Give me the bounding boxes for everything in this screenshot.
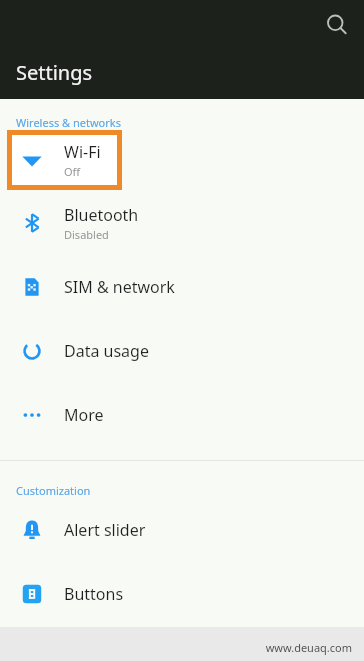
staticText: SIM & network [64, 276, 175, 298]
staticText: www.deuaq.com [265, 640, 352, 655]
staticText: Off [64, 164, 81, 179]
staticText: Customization [16, 483, 91, 498]
button[interactable]: SIM & network [0, 255, 364, 319]
button[interactable]: Alert slider [0, 498, 364, 562]
button[interactable]: Search [313, 1, 361, 49]
staticText: Alert slider [64, 519, 146, 541]
button[interactable]: Bluetooth [0, 190, 364, 255]
staticText: Bluetooth [64, 204, 139, 226]
staticText: Data usage [64, 340, 149, 362]
button[interactable]: Wi-Fi [0, 130, 364, 190]
staticText: Wi-Fi [64, 141, 101, 163]
button[interactable]: Buttons [0, 562, 364, 626]
staticText: Buttons [64, 583, 124, 605]
staticText: Wireless & networks [16, 115, 121, 130]
button[interactable]: Data usage [0, 319, 364, 383]
staticText: Settings [16, 59, 93, 86]
button[interactable]: More [0, 383, 364, 447]
staticText: More [64, 404, 104, 426]
staticText: Disabled [64, 227, 109, 242]
